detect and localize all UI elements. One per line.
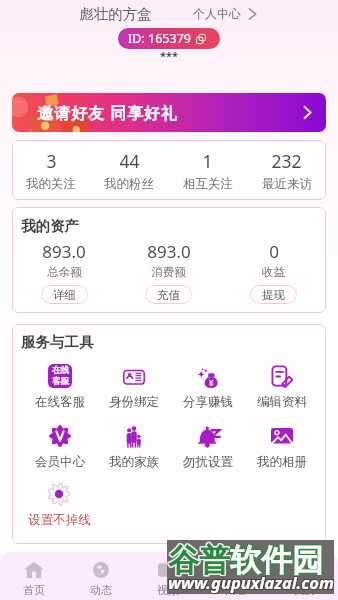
staticText: 893.0 <box>42 240 86 263</box>
button[interactable]: 我的相册 <box>245 424 319 470</box>
staticText: 在线 <box>52 365 69 376</box>
staticText: 首页 <box>23 583 45 597</box>
button[interactable]: 我的家族 <box>97 424 171 470</box>
staticText: 3 <box>46 149 57 173</box>
staticText: 谷普 <box>167 542 229 581</box>
staticText: 会员中心 <box>35 454 85 470</box>
staticText: 我的资产 <box>21 217 79 235</box>
staticText: 勿扰设置 <box>183 454 233 470</box>
staticText: 谷普 <box>169 542 231 581</box>
staticText: 我的关注 <box>26 176 76 192</box>
staticText: 我的 <box>293 583 315 597</box>
staticText: 我的粉丝 <box>104 176 154 192</box>
staticText: 身份绑定 <box>109 394 159 410</box>
button[interactable]: 232 <box>247 140 326 192</box>
staticText: 彪壮的方盒 <box>79 5 152 23</box>
staticText: 0 <box>269 240 279 263</box>
staticText: www.gupuxlazal.com <box>168 570 334 592</box>
staticText: 软件园 <box>231 541 324 580</box>
staticText: 893.0 <box>147 240 191 263</box>
button[interactable]: 44 <box>90 140 168 192</box>
staticText: 动态 <box>90 583 112 597</box>
button[interactable]: 分享赚钱 <box>171 364 245 410</box>
staticText: www.gupuxlazal.com <box>168 572 334 594</box>
staticText: 谷普 <box>168 540 230 579</box>
staticText: 谷普 <box>168 542 230 581</box>
staticText: www.gupuxlazal.com <box>167 570 333 592</box>
staticText: www.gupuxlazal.com <box>168 571 334 593</box>
button[interactable]: 3 <box>12 140 90 192</box>
button[interactable]: 编辑资料 <box>245 364 319 410</box>
staticText: www.gupuxlazal.com <box>167 571 333 593</box>
staticText: 谷普 <box>169 541 231 580</box>
button[interactable]: 在线 <box>22 364 97 410</box>
staticText: 我的家族 <box>109 454 159 470</box>
button[interactable]: 首页 <box>0 552 67 597</box>
staticText: 232 <box>271 149 302 173</box>
button[interactable]: 详细 <box>41 285 88 304</box>
staticText: 软件园 <box>230 540 323 579</box>
staticText: 谷普 <box>167 540 229 579</box>
staticText: 视频 <box>157 583 179 597</box>
button[interactable]: 设置不掉线 <box>22 482 96 528</box>
button[interactable]: 勿扰设置 <box>171 424 245 470</box>
button[interactable]: ID: 165379 <box>118 28 220 49</box>
staticText: 提现 <box>262 288 285 302</box>
staticText: 收益 <box>262 265 285 279</box>
button[interactable]: 消息 <box>202 552 270 597</box>
staticText: 软件园 <box>230 542 323 581</box>
button[interactable]: 充值 <box>145 285 192 304</box>
staticText: 客服 <box>52 376 69 387</box>
staticText: 消费额 <box>151 265 186 279</box>
staticText: 编辑资料 <box>257 394 307 410</box>
staticText: 软件园 <box>230 541 323 580</box>
button[interactable]: 身份绑定 <box>97 364 171 410</box>
staticText: 总余额 <box>47 265 82 279</box>
staticText: 44 <box>119 149 140 173</box>
staticText: 谷普 <box>169 540 231 579</box>
staticText: www.gupuxlazal.com <box>167 572 333 594</box>
button[interactable]: 视频 <box>134 552 202 597</box>
button[interactable]: 我的 <box>270 552 338 597</box>
staticText: 详细 <box>53 288 76 302</box>
staticText: 软件园 <box>229 542 322 581</box>
staticText: 谷普 <box>168 541 230 580</box>
staticText: 谷普 <box>167 541 229 580</box>
staticText: 消息 <box>225 583 247 597</box>
staticText: 个人中心 <box>193 6 241 21</box>
staticText: 设置不掉线 <box>28 512 91 528</box>
other: More <box>303 106 312 119</box>
staticText: www.gupuxlazal.com <box>169 570 335 592</box>
button[interactable]: 提现 <box>250 285 297 304</box>
staticText: 分享赚钱 <box>183 394 233 410</box>
staticText: 服务与工具 <box>21 333 94 351</box>
staticText: 相互关注 <box>183 176 233 192</box>
staticText: 最近来访 <box>262 176 312 192</box>
staticText: 软件园 <box>229 540 322 579</box>
staticText: www.gupuxlazal.com <box>169 572 335 594</box>
button[interactable]: 邀请好友 同享好礼 <box>12 93 326 132</box>
button[interactable]: 个人中心 <box>193 6 257 21</box>
staticText: 我的相册 <box>257 454 307 470</box>
staticText: 邀请好友 同享好礼 <box>37 102 178 124</box>
staticText: 软件园 <box>231 542 324 581</box>
staticText: ID: 165379 <box>128 30 191 47</box>
button[interactable]: 动态 <box>67 552 134 597</box>
staticText: www.gupuxlazal.com <box>169 571 335 593</box>
staticText: 软件园 <box>231 540 324 579</box>
staticText: 充值 <box>157 288 180 302</box>
staticText: 1 <box>202 149 213 173</box>
button[interactable]: 1 <box>168 140 247 192</box>
staticText: *** <box>154 48 184 63</box>
staticText: 软件园 <box>229 541 322 580</box>
staticText: 在线客服 <box>35 394 85 410</box>
button[interactable]: 会员中心 <box>22 424 97 470</box>
